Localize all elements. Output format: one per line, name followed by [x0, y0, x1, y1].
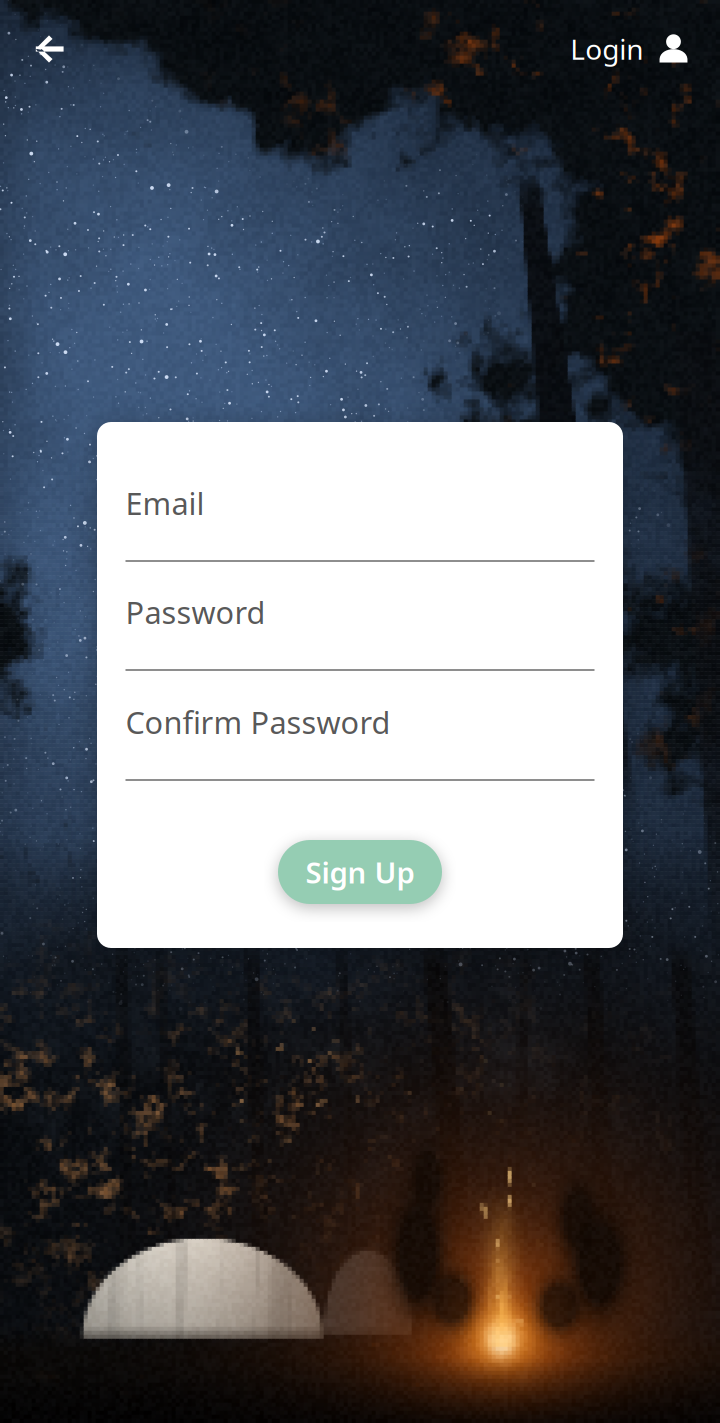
staticText: Password	[125, 592, 265, 632]
button[interactable]: Sign Up	[278, 840, 442, 904]
staticText: Confirm Password	[125, 702, 390, 742]
staticText: Sign Up	[305, 852, 414, 891]
button[interactable]: Back	[12, 11, 88, 87]
button[interactable]: Login	[552, 11, 706, 87]
staticText: Email	[125, 483, 204, 523]
staticText: Login	[570, 30, 643, 68]
